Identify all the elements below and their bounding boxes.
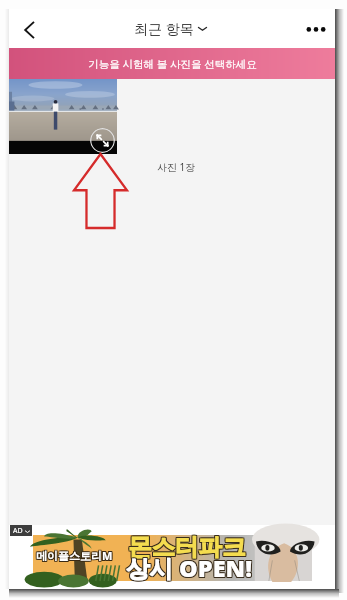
staticText: 메이플스토리M [35, 547, 112, 562]
staticText: AD [13, 526, 23, 536]
staticText: 메이플스토리M [36, 548, 113, 563]
button[interactable]: 기능을 시험해 볼 사진을 선택하세요 [9, 48, 335, 79]
staticText: 몬스터파크 [129, 531, 247, 561]
staticText: 상시 OPEN! [125, 553, 252, 585]
button[interactable]: Ad info [10, 525, 32, 536]
staticText: 최근 항목 [134, 19, 194, 38]
staticText: 메이플스토리M [37, 548, 114, 563]
staticText: 상시 OPEN! [127, 551, 254, 583]
staticText: 몬스터파크 [127, 533, 245, 563]
staticText: 몬스터파크 [128, 531, 246, 561]
staticText: 메이플스토리M [37, 547, 114, 562]
staticText: 상시 OPEN! [126, 552, 253, 584]
button[interactable]: 최근 항목 [134, 19, 208, 38]
staticText: 메이플스토리M [36, 549, 113, 564]
staticText: 몬스터파크 [129, 532, 247, 562]
staticText: 몬스터파크 [128, 532, 246, 562]
staticText: 몬스터파크 [129, 533, 247, 563]
staticText: 기능을 시험해 볼 사진을 선택하세요 [88, 57, 257, 71]
button[interactable]: Back [9, 10, 47, 48]
button[interactable]: More options [295, 9, 335, 48]
staticText: 상시 OPEN! [127, 553, 254, 585]
staticText: 몬스터파크 [127, 531, 245, 561]
staticText: 상시 OPEN! [126, 553, 253, 585]
staticText: 메이플스토리M [37, 549, 114, 564]
button[interactable]: Expand [90, 128, 115, 153]
button[interactable]: Expand [9, 79, 117, 154]
staticText: 상시 OPEN! [125, 552, 252, 584]
staticText: 상시 OPEN! [125, 551, 252, 583]
staticText: 몬스터파크 [128, 533, 246, 563]
button[interactable]: 메이플스토리M [33, 535, 312, 581]
staticText: 몬스터파크 [127, 532, 245, 562]
staticText: 메이플스토리M [35, 548, 112, 563]
staticText: 상시 OPEN! [126, 551, 253, 583]
staticText: 사진 1장 [157, 160, 196, 174]
staticText: 상시 OPEN! [127, 552, 254, 584]
staticText: 메이플스토리M [36, 547, 113, 562]
staticText: 메이플스토리M [35, 549, 112, 564]
